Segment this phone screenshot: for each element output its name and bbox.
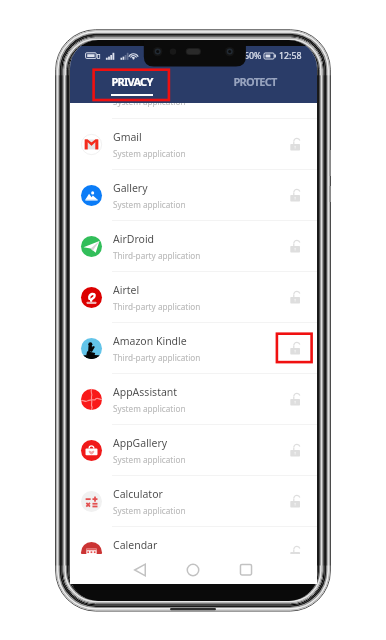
button[interactable]: Toggle privacy lock for Calendar xyxy=(281,527,317,577)
staticText: System application xyxy=(113,96,186,107)
button[interactable]: Toggle privacy lock for Amazon Kindle xyxy=(281,323,317,373)
staticText: Third-party application xyxy=(113,301,201,312)
staticText: System application xyxy=(113,454,186,465)
staticText: Calendar xyxy=(113,538,158,552)
staticText: System application xyxy=(113,556,186,567)
staticText: AppAssistant xyxy=(113,385,178,399)
staticText: Amazon Kindle xyxy=(113,334,187,348)
button[interactable]: Gallery xyxy=(70,170,317,221)
staticText: Gmail xyxy=(113,130,142,144)
staticText: Third-party application xyxy=(113,352,201,363)
button[interactable]: Toggle privacy lock for AppAssistant xyxy=(281,374,317,424)
staticText: Third-party application xyxy=(113,250,201,261)
button[interactable]: AirDroid xyxy=(70,221,317,272)
button[interactable]: Amazon Kindle xyxy=(70,323,317,374)
staticText: System application xyxy=(113,403,186,414)
staticText: 60% xyxy=(244,50,262,62)
staticText: PROTECT xyxy=(233,74,277,89)
staticText: System application xyxy=(113,199,186,210)
button[interactable]: System application xyxy=(70,68,317,119)
button[interactable]: Airtel xyxy=(70,272,317,323)
staticText: System application xyxy=(113,505,186,516)
button[interactable]: Toggle privacy lock for Airtel xyxy=(281,272,317,322)
button[interactable]: Toggle privacy lock for AppGallery xyxy=(281,425,317,475)
button[interactable]: Toggle privacy lock for Gmail xyxy=(281,119,317,169)
button[interactable]: PROTECT xyxy=(193,66,317,103)
staticText: Gallery xyxy=(113,181,148,195)
staticText: AirDroid xyxy=(113,232,155,246)
button[interactable]: Toggle privacy lock for Gallery xyxy=(281,170,317,220)
staticText: AppGallery xyxy=(113,436,168,450)
button[interactable]: Home xyxy=(179,556,207,584)
staticText: 12:58 xyxy=(279,50,302,62)
button[interactable]: Back xyxy=(126,556,154,584)
staticText: PRIVACY xyxy=(111,74,153,89)
button[interactable]: Calculator xyxy=(70,476,317,527)
button[interactable]: PRIVACY xyxy=(70,66,193,103)
button[interactable]: AppGallery xyxy=(70,425,317,476)
button[interactable]: Toggle privacy lock for xyxy=(281,68,317,118)
button[interactable]: Gmail xyxy=(70,119,317,170)
button[interactable]: Recent apps xyxy=(232,556,260,584)
staticText: Airtel xyxy=(113,283,140,297)
button[interactable]: AppAssistant xyxy=(70,374,317,425)
button[interactable]: Toggle privacy lock for Calculator xyxy=(281,476,317,526)
button[interactable]: Toggle privacy lock for AirDroid xyxy=(281,221,317,271)
staticText: Calculator xyxy=(113,487,163,501)
button[interactable]: Calendar xyxy=(70,527,317,578)
staticText: System application xyxy=(113,148,186,159)
